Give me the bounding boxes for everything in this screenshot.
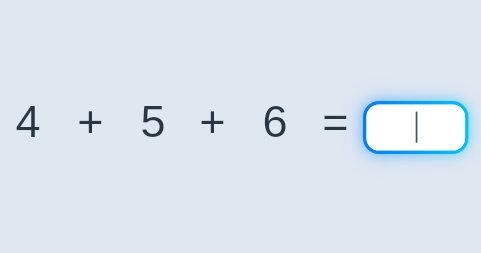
button[interactable]: Answer input (333, 71, 481, 184)
staticText: + (199, 96, 226, 146)
staticText: 5 (140, 96, 166, 146)
staticText: 4 (15, 96, 41, 146)
staticText: + (77, 96, 104, 146)
staticText: 6 (262, 96, 288, 146)
staticText: = (322, 96, 349, 146)
